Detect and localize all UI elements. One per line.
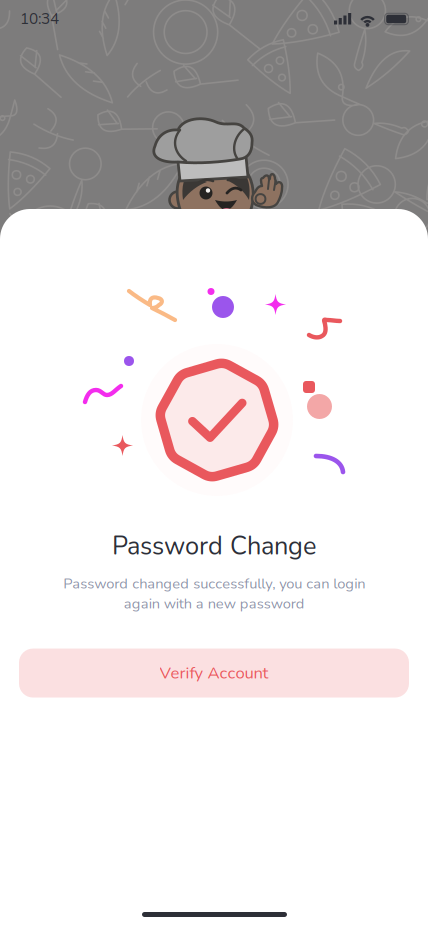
staticText: 10:34 bbox=[20, 8, 59, 29]
staticText: Verify Account bbox=[159, 662, 268, 684]
staticText: Password changed successfully, you can l… bbox=[63, 574, 365, 614]
staticText: Password Change bbox=[112, 529, 316, 564]
button[interactable]: Verify Account bbox=[19, 649, 409, 698]
